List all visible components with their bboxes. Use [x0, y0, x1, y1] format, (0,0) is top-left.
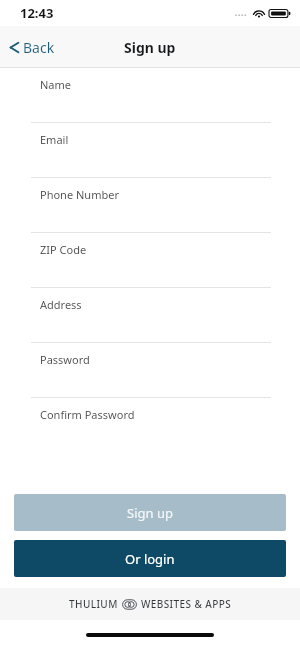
staticText: ZIP Code — [40, 242, 87, 257]
button[interactable]: Or login — [14, 540, 286, 577]
button[interactable]: ZIP Code — [0, 233, 300, 288]
staticText: 12:43 — [20, 4, 54, 22]
staticText: THULIUM — [69, 597, 118, 611]
button[interactable]: Email — [0, 123, 300, 178]
staticText: Back — [23, 38, 55, 57]
staticText: Confirm Password — [40, 407, 135, 422]
button[interactable]: Password — [0, 343, 300, 398]
button[interactable]: Confirm Password — [0, 398, 300, 453]
staticText: Address — [40, 297, 82, 312]
button[interactable]: Address — [0, 288, 300, 343]
staticText: Or login — [125, 550, 175, 568]
staticText: Name — [40, 77, 72, 92]
staticText: Password — [40, 352, 90, 367]
button[interactable]: Sign up — [14, 494, 286, 531]
staticText: Phone Number — [40, 187, 119, 202]
staticText: Sign up — [124, 38, 176, 57]
staticText: Email — [40, 132, 69, 147]
button[interactable]: Phone Number — [0, 178, 300, 233]
button[interactable]: Back — [0, 32, 65, 63]
staticText: WEBSITES & APPS — [141, 597, 232, 611]
button[interactable]: Name — [0, 68, 300, 123]
staticText: Sign up — [127, 504, 173, 522]
